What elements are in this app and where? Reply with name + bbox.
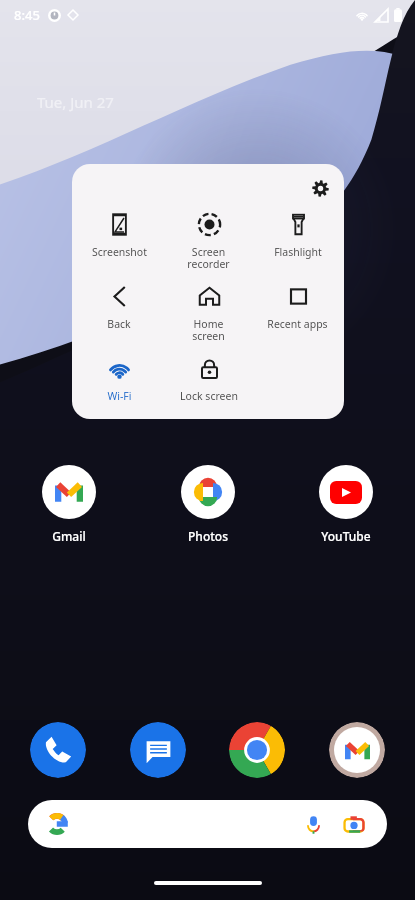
button[interactable]: Screenshot bbox=[74, 202, 164, 262]
staticText: YouTube bbox=[321, 528, 371, 544]
button[interactable]: Settings bbox=[306, 174, 334, 202]
button[interactable]: Gmail bbox=[30, 465, 108, 544]
button[interactable]: Google Lens bbox=[339, 809, 369, 839]
button[interactable]: Wi-Fi bbox=[74, 346, 164, 406]
staticText: Tue, Jun 27 bbox=[37, 92, 114, 112]
staticText: Flashlight bbox=[274, 245, 322, 259]
button[interactable]: Home screen bbox=[164, 274, 253, 346]
button[interactable]: Phone bbox=[30, 722, 86, 778]
button[interactable]: Back bbox=[74, 274, 164, 334]
staticText: Wi-Fi bbox=[107, 389, 132, 403]
staticText: Gmail bbox=[52, 528, 86, 544]
staticText: Photos bbox=[188, 528, 228, 544]
button[interactable]: Voice search bbox=[28, 800, 387, 848]
button[interactable]: Chrome bbox=[229, 722, 285, 778]
button[interactable]: Voice search bbox=[298, 809, 328, 839]
button[interactable]: Photos bbox=[169, 465, 247, 544]
staticText: Back bbox=[107, 317, 131, 331]
button[interactable]: Screen recorder bbox=[164, 202, 253, 274]
staticText: Lock screen bbox=[180, 389, 238, 403]
staticText: Recent apps bbox=[267, 317, 328, 331]
button[interactable]: Gmail bbox=[329, 722, 385, 778]
staticText: 8:45 bbox=[14, 6, 40, 24]
button[interactable]: Messages bbox=[130, 722, 186, 778]
button[interactable]: Lock screen bbox=[164, 346, 253, 406]
button[interactable]: Recent apps bbox=[253, 274, 342, 334]
staticText: Screenshot bbox=[92, 245, 147, 259]
staticText: Home screen bbox=[192, 317, 225, 343]
button[interactable]: YouTube bbox=[307, 465, 385, 544]
staticText: Screen recorder bbox=[187, 245, 230, 271]
button[interactable]: Flashlight bbox=[253, 202, 342, 262]
